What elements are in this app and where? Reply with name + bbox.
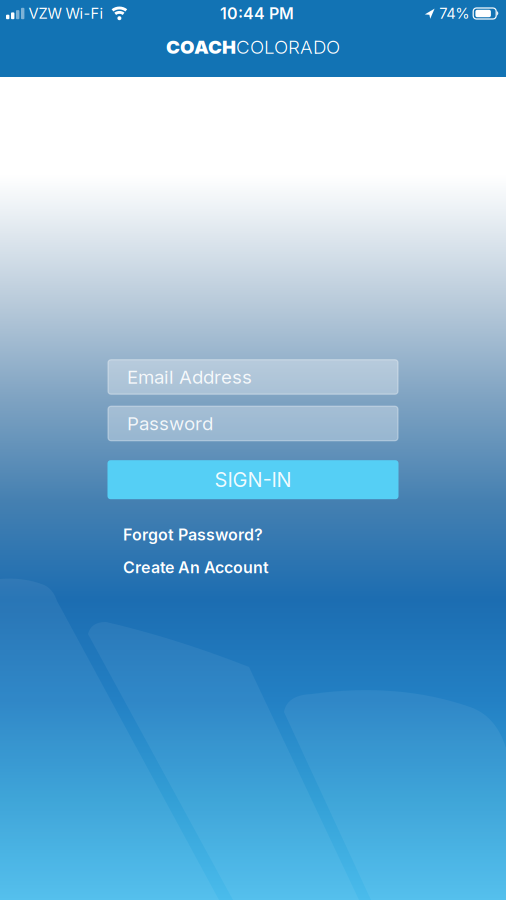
button[interactable]: Create An Account: [123, 558, 269, 577]
staticText: SIGN-IN: [214, 468, 291, 491]
button[interactable]: Password: [108, 406, 398, 441]
button[interactable]: Email Address: [108, 360, 398, 394]
staticText: VZW Wi-Fi: [28, 5, 103, 22]
staticText: Forgot Password?: [123, 525, 263, 544]
staticText: COLORADO: [236, 36, 340, 58]
button[interactable]: SIGN-IN: [107, 460, 398, 499]
staticText: 10:44 PM: [220, 4, 294, 23]
staticText: Create An Account: [123, 558, 269, 577]
staticText: Password: [127, 412, 213, 434]
staticText: COACH: [166, 36, 236, 58]
staticText: Email Address: [127, 366, 252, 388]
staticText: 74%: [439, 5, 469, 22]
button[interactable]: Forgot Password?: [123, 525, 263, 544]
